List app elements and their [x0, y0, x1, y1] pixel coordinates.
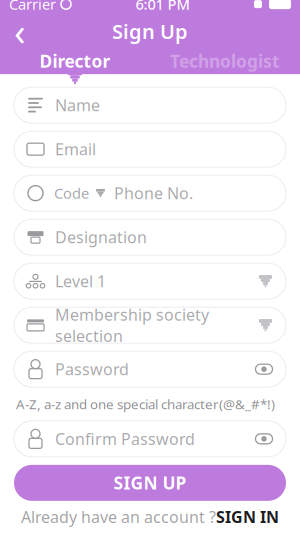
- button[interactable]: Confirm Password: [14, 421, 286, 457]
- button[interactable]: Email: [14, 131, 286, 167]
- staticText: A-Z, a-z and one special character(@&_#*…: [16, 395, 275, 413]
- staticText: Membership society selection: [55, 304, 209, 346]
- staticText: ‹: [14, 6, 26, 56]
- staticText: Name: [55, 94, 100, 116]
- staticText: Phone No.: [114, 182, 193, 204]
- staticText: Password: [55, 358, 129, 380]
- staticText: Email: [55, 138, 96, 160]
- staticText: Already have an account ?: [21, 506, 216, 527]
- staticText: Sign Up: [112, 18, 188, 44]
- button[interactable]: Membership society selection: [14, 307, 286, 343]
- staticText: 6:01 PM: [135, 0, 189, 14]
- staticText: Carrier: [9, 0, 56, 14]
- staticText: Confirm Password: [55, 428, 195, 449]
- staticText: Technologist: [170, 50, 280, 73]
- button[interactable]: Code: [14, 175, 286, 211]
- button[interactable]: Password: [14, 351, 286, 387]
- staticText: Designation: [55, 226, 147, 248]
- button[interactable]: Already have an account ?: [0, 501, 300, 533]
- staticText: SIGN IN: [216, 506, 279, 527]
- button[interactable]: Technologist: [150, 48, 300, 74]
- staticText: SIGN UP: [113, 471, 186, 494]
- button[interactable]: SIGN UP: [14, 465, 286, 501]
- button[interactable]: Name: [14, 87, 286, 123]
- button[interactable]: Back: [0, 14, 40, 48]
- staticText: Director: [39, 50, 110, 73]
- staticText: Code: [54, 183, 89, 203]
- staticText: Level 1: [55, 270, 106, 292]
- button[interactable]: Designation: [14, 219, 286, 255]
- button[interactable]: Level 1: [14, 263, 286, 299]
- button[interactable]: Director: [0, 48, 150, 74]
